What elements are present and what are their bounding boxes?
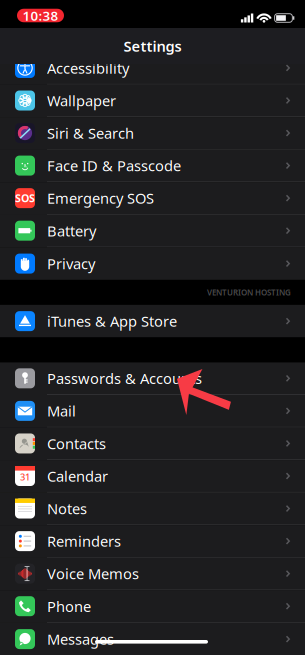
staticText: Wallpaper	[47, 91, 116, 110]
button[interactable]: Contacts	[0, 427, 305, 460]
staticText: Emergency SOS	[47, 188, 154, 208]
staticText: Calendar	[47, 466, 108, 486]
button[interactable]: Privacy	[0, 247, 305, 280]
button[interactable]: 31	[0, 460, 305, 493]
staticText: Face ID & Passcode	[47, 156, 181, 175]
staticText: Accessibility	[47, 58, 129, 78]
staticText: Privacy	[47, 254, 95, 273]
button[interactable]: Voice Memos	[0, 558, 305, 590]
staticText: SOS	[15, 191, 35, 205]
button[interactable]: Phone	[0, 590, 305, 623]
button[interactable]: Notes	[0, 493, 305, 525]
staticText: Messages	[47, 629, 114, 649]
staticText: Contacts	[47, 434, 106, 453]
staticText: Voice Memos	[47, 564, 139, 583]
button[interactable]: Reminders	[0, 525, 305, 558]
button[interactable]: Siri & Search	[0, 117, 305, 150]
button[interactable]: Messages	[0, 623, 305, 655]
staticText: Battery	[47, 221, 96, 240]
staticText: iTunes & App Store	[47, 311, 177, 331]
staticText: 31	[20, 471, 30, 483]
button[interactable]: Passwords & Accounts	[0, 362, 305, 395]
staticText: Mail	[47, 401, 76, 421]
staticText: Passwords & Accounts	[47, 369, 202, 388]
staticText: Siri & Search	[47, 123, 134, 143]
button[interactable]: Face ID & Passcode	[0, 150, 305, 182]
staticText: Reminders	[47, 531, 121, 551]
staticText: 10:38	[22, 7, 58, 24]
staticText: Settings	[123, 36, 181, 56]
button[interactable]: Battery	[0, 215, 305, 247]
button[interactable]: Wallpaper	[0, 85, 305, 117]
button[interactable]: iTunes & App Store	[0, 305, 305, 337]
button[interactable]: Mail	[0, 395, 305, 427]
staticText: VENTURION HOSTING	[207, 287, 291, 298]
staticText: Notes	[47, 499, 87, 518]
button[interactable]: SOS	[0, 182, 305, 215]
staticText: Phone	[47, 596, 91, 616]
button[interactable]: Accessibility	[0, 52, 305, 84]
